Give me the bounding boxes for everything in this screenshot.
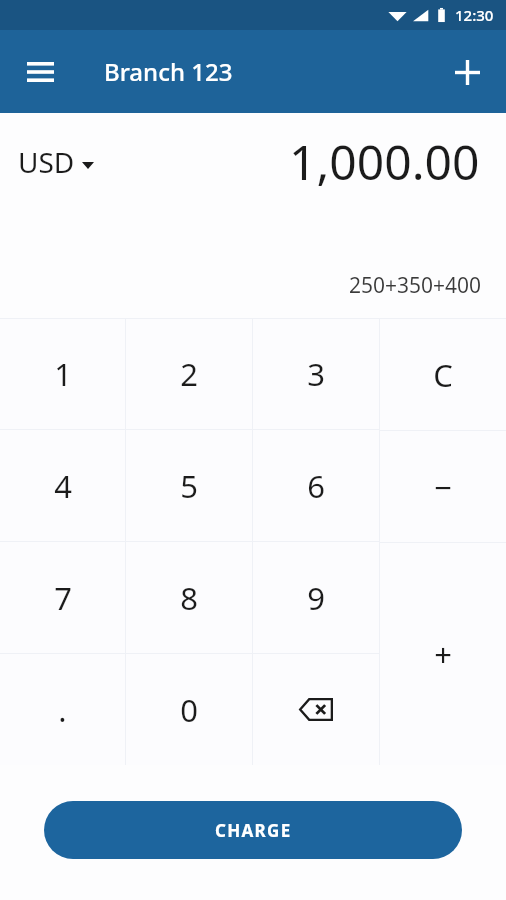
staticText: 3 bbox=[307, 353, 325, 395]
button[interactable]: CHARGE bbox=[44, 801, 462, 859]
staticText: + bbox=[434, 633, 452, 675]
staticText: . bbox=[58, 689, 67, 731]
staticText: 12:30 bbox=[455, 5, 494, 25]
staticText: − bbox=[434, 466, 452, 508]
staticText: 8 bbox=[180, 577, 198, 619]
button[interactable]: . bbox=[0, 654, 125, 765]
button[interactable]: − bbox=[380, 431, 506, 542]
staticText: 1,000.00 bbox=[289, 129, 480, 194]
staticText: C bbox=[433, 354, 453, 396]
staticText: 4 bbox=[54, 465, 72, 507]
button[interactable]: USD bbox=[18, 143, 94, 181]
staticText: 2 bbox=[180, 353, 198, 395]
staticText: 250+350+400 bbox=[349, 271, 482, 300]
staticText: USD bbox=[18, 143, 75, 181]
button[interactable]: 1 bbox=[0, 319, 125, 429]
staticText: 5 bbox=[180, 465, 198, 507]
staticText: 7 bbox=[54, 577, 72, 619]
button[interactable]: Add bbox=[443, 48, 491, 96]
button[interactable]: 0 bbox=[126, 654, 252, 765]
button[interactable]: Open navigation menu bbox=[16, 48, 64, 96]
staticText: 9 bbox=[307, 577, 325, 619]
button[interactable]: 3 bbox=[253, 319, 379, 429]
staticText: Branch 123 bbox=[104, 55, 233, 88]
staticText: 1 bbox=[54, 353, 72, 395]
button[interactable]: 7 bbox=[0, 542, 125, 653]
button[interactable]: 2 bbox=[126, 319, 252, 429]
staticText: CHARGE bbox=[215, 819, 292, 842]
button[interactable]: 9 bbox=[253, 542, 379, 653]
button[interactable]: 5 bbox=[126, 430, 252, 541]
button[interactable]: 6 bbox=[253, 430, 379, 541]
button[interactable]: C bbox=[380, 319, 506, 430]
staticText: 0 bbox=[180, 689, 198, 731]
button[interactable]: + bbox=[380, 543, 506, 765]
button[interactable]: Backspace bbox=[253, 654, 379, 765]
staticText: 6 bbox=[307, 465, 325, 507]
button[interactable]: 4 bbox=[0, 430, 125, 541]
button[interactable]: 8 bbox=[126, 542, 252, 653]
